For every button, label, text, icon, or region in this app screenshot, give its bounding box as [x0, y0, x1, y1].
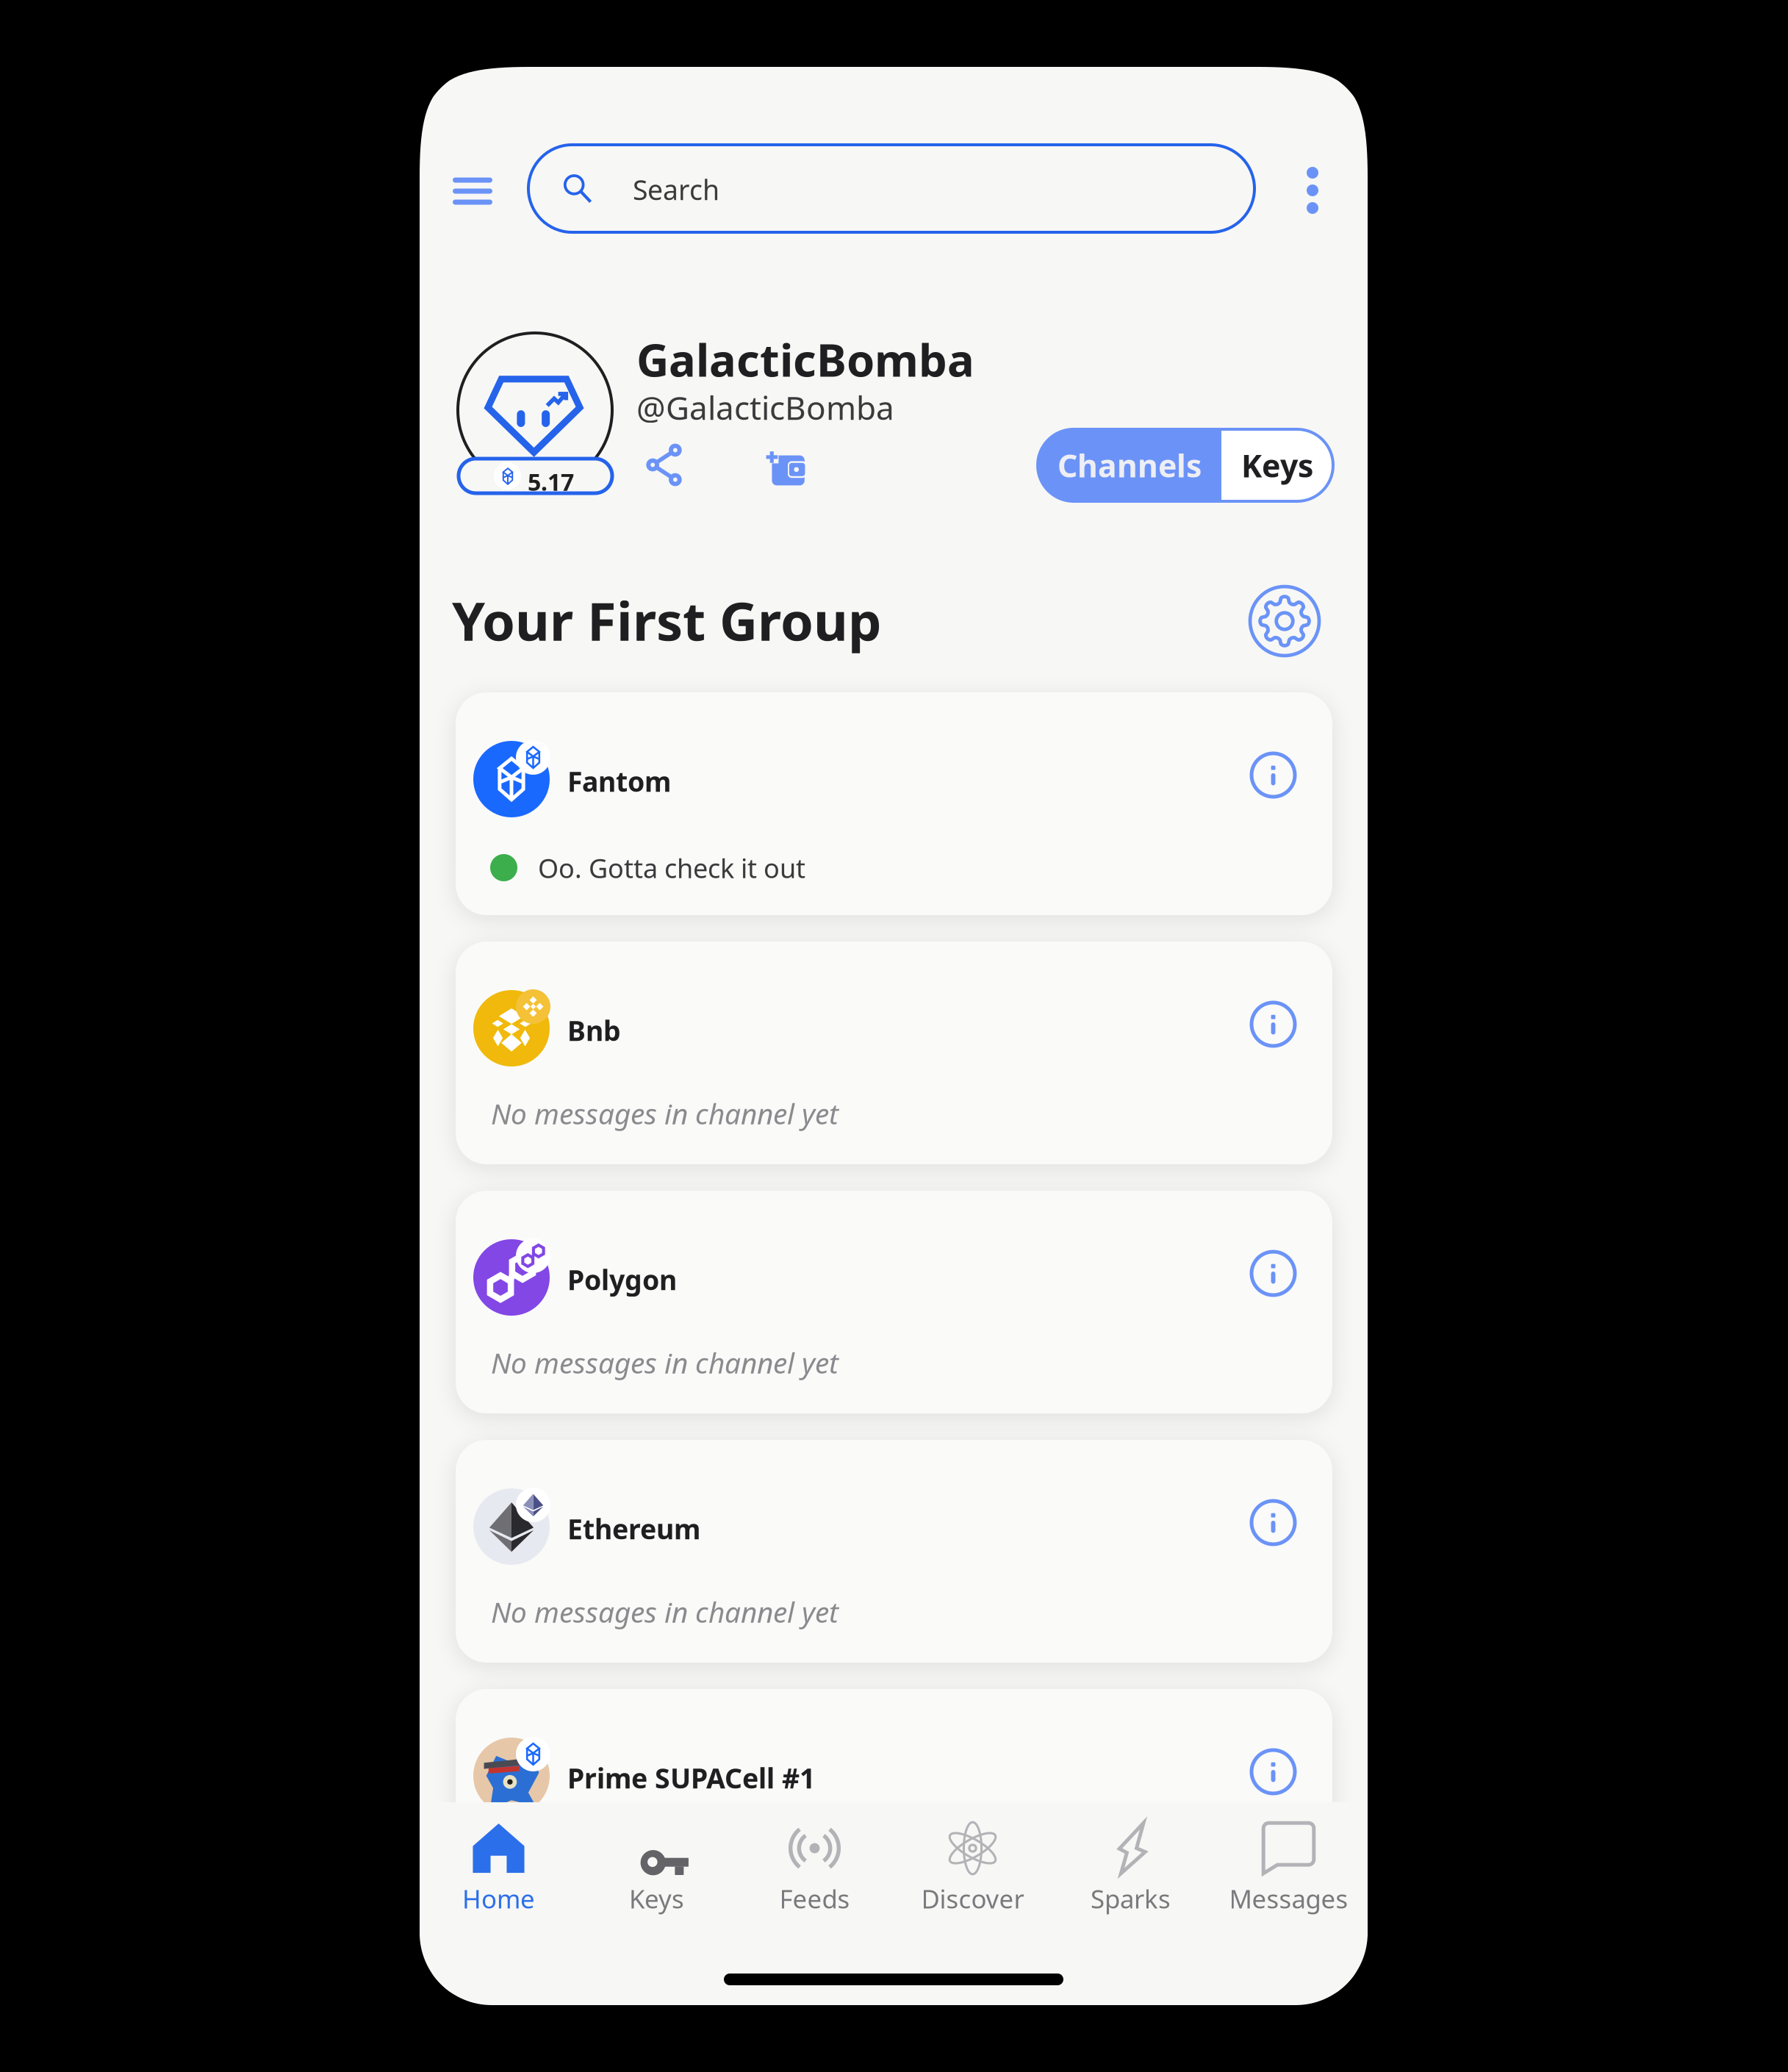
staticText: No messages in channel yet: [491, 1593, 839, 1630]
staticText: Messages: [1229, 1882, 1348, 1915]
staticText: Bnb: [567, 1012, 621, 1049]
button[interactable]: Channels: [1038, 429, 1221, 501]
button[interactable]: Share profile: [642, 443, 686, 487]
button[interactable]: Channel info: [1252, 1750, 1295, 1793]
staticText: Feeds: [779, 1882, 850, 1915]
button[interactable]: Keys: [578, 1818, 736, 1936]
staticText: Sparks: [1091, 1882, 1171, 1915]
staticText: Search: [633, 171, 719, 208]
staticText: Fantom: [567, 763, 671, 799]
staticText: Prime SUPACell #1: [567, 1760, 815, 1796]
staticText: Keys: [1241, 444, 1313, 486]
staticText: @GalacticBomba: [636, 386, 894, 429]
button[interactable]: Discover: [894, 1818, 1052, 1936]
button[interactable]: Search: [528, 145, 1254, 232]
staticText: Channels: [1058, 444, 1202, 486]
button[interactable]: Keys: [1221, 429, 1333, 501]
staticText: Discover: [921, 1882, 1024, 1915]
button[interactable]: Add wallet: [759, 444, 803, 488]
button[interactable]: Channel info: [1252, 1252, 1295, 1295]
button[interactable]: Channel info: [1252, 753, 1295, 797]
staticText: GalacticBomba: [636, 329, 974, 389]
button[interactable]: Menu: [453, 170, 506, 212]
staticText: 5.17: [528, 466, 574, 497]
staticText: No messages in channel yet: [491, 1344, 839, 1381]
staticText: Home: [462, 1882, 535, 1915]
staticText: No messages in channel yet: [491, 1094, 839, 1132]
button[interactable]: Channel info: [1252, 1501, 1295, 1544]
button[interactable]: Group settings: [1250, 587, 1319, 656]
button[interactable]: Feeds: [736, 1818, 894, 1936]
staticText: Oo. Gotta check it out: [538, 850, 805, 886]
staticText: Polygon: [567, 1261, 677, 1298]
staticText: Ethereum: [567, 1510, 700, 1547]
staticText: Keys: [629, 1882, 684, 1915]
staticText: Your First Group: [452, 585, 882, 655]
button[interactable]: Channel info: [1252, 1003, 1295, 1046]
button[interactable]: More options: [1290, 157, 1335, 223]
button[interactable]: Messages: [1210, 1818, 1368, 1936]
button[interactable]: Sparks: [1052, 1818, 1210, 1936]
button[interactable]: Home: [420, 1818, 578, 1936]
